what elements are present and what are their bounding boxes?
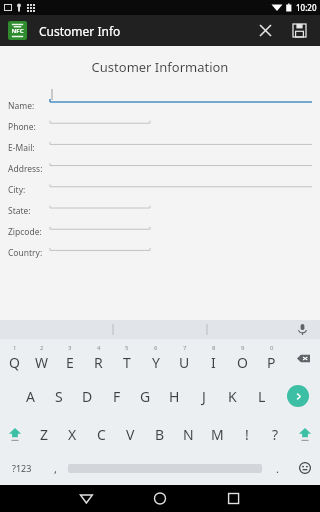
button[interactable]: Save	[282, 15, 316, 46]
staticText: W	[35, 353, 49, 372]
staticText: K	[228, 387, 237, 406]
button[interactable]: NFC app icon	[8, 21, 27, 40]
button[interactable]: 2	[28, 339, 56, 377]
button[interactable]: J	[189, 377, 218, 415]
staticText: E	[66, 353, 74, 372]
staticText: M	[211, 425, 224, 444]
button[interactable]: Back	[56, 485, 116, 512]
button[interactable]: Z	[30, 415, 58, 453]
button[interactable]: Voice input	[284, 320, 320, 339]
staticText: 1	[13, 344, 17, 352]
button[interactable]: L	[247, 377, 276, 415]
staticText: 7	[183, 344, 187, 352]
button[interactable]: ?	[261, 415, 290, 453]
staticText: X	[68, 425, 77, 444]
button[interactable]: K	[218, 377, 247, 415]
button[interactable]: Shift	[0, 415, 30, 453]
button[interactable]: State:	[8, 200, 320, 221]
button[interactable]: Home	[130, 485, 190, 512]
staticText: !	[245, 425, 249, 444]
button[interactable]: N	[174, 415, 203, 453]
staticText: City:	[8, 184, 26, 196]
button[interactable]: Enter	[276, 377, 320, 415]
button[interactable]: 1	[0, 339, 28, 377]
button[interactable]: Close	[248, 15, 282, 46]
staticText: D	[82, 387, 93, 406]
staticText: O	[237, 353, 248, 372]
staticText: Z	[40, 425, 49, 444]
staticText: 9	[241, 344, 245, 352]
button[interactable]: 3	[56, 339, 84, 377]
button[interactable]: Country:	[8, 242, 320, 263]
staticText: Name:	[8, 100, 35, 112]
button[interactable]: 6	[141, 339, 170, 377]
staticText: 2	[40, 344, 44, 352]
staticText: I	[211, 353, 216, 372]
staticText: R	[94, 353, 103, 372]
button[interactable]: Shift	[290, 415, 320, 453]
button[interactable]: S	[44, 377, 73, 415]
button[interactable]: B	[145, 415, 174, 453]
staticText: L	[258, 387, 266, 406]
staticText: Country:	[8, 247, 43, 259]
button[interactable]: H	[160, 377, 189, 415]
staticText: P	[267, 353, 276, 372]
button[interactable]: !	[232, 415, 261, 453]
button[interactable]: Backspace	[286, 339, 320, 377]
staticText: ?123	[12, 462, 32, 474]
button[interactable]: M	[203, 415, 232, 453]
button[interactable]: 0	[257, 339, 286, 377]
staticText: E-Mail:	[8, 142, 35, 154]
staticText: .	[276, 461, 279, 476]
staticText: S	[55, 387, 63, 406]
staticText: N	[183, 425, 194, 444]
staticText: B	[155, 425, 165, 444]
button[interactable]: A	[16, 377, 44, 415]
staticText: H	[169, 387, 180, 406]
button[interactable]: Emoji	[290, 453, 320, 483]
button[interactable]: 4	[84, 339, 112, 377]
button[interactable]: C	[87, 415, 116, 453]
button[interactable]: V	[116, 415, 145, 453]
button[interactable]: Space	[68, 453, 262, 483]
staticText: 3	[68, 344, 72, 352]
staticText: G	[140, 387, 151, 406]
staticText: NFC	[11, 27, 24, 35]
staticText: Phone:	[8, 121, 36, 133]
staticText: T	[123, 353, 131, 372]
button[interactable]: Name:	[8, 95, 320, 116]
button[interactable]: Recents	[236, 485, 296, 512]
staticText: Zipcode:	[8, 226, 42, 238]
button[interactable]: X	[58, 415, 87, 453]
button[interactable]: Zipcode:	[8, 221, 320, 242]
button[interactable]: E-Mail:	[8, 137, 320, 158]
button[interactable]: 9	[228, 339, 257, 377]
staticText: ,	[54, 461, 57, 476]
button[interactable]: Address:	[8, 158, 320, 179]
staticText: Customer Information	[0, 58, 320, 76]
staticText: 6	[154, 344, 158, 352]
button[interactable]: D	[73, 377, 102, 415]
staticText: Address:	[8, 163, 43, 175]
staticText: A	[26, 387, 35, 406]
staticText: 5	[125, 344, 129, 352]
staticText: Q	[9, 353, 20, 372]
staticText: State:	[8, 205, 31, 217]
button[interactable]: Phone:	[8, 116, 320, 137]
staticText: 8	[212, 344, 216, 352]
staticText: 4	[97, 344, 101, 352]
button[interactable]: ?123	[0, 453, 44, 483]
staticText: Customer Info	[39, 23, 121, 39]
button[interactable]: City:	[8, 179, 320, 200]
staticText: ?	[272, 425, 279, 444]
button[interactable]: 7	[170, 339, 199, 377]
button[interactable]: .	[264, 453, 290, 483]
staticText: Y	[152, 353, 160, 372]
button[interactable]: 8	[199, 339, 228, 377]
staticText: J	[202, 387, 206, 406]
button[interactable]: 5	[112, 339, 141, 377]
button[interactable]: G	[131, 377, 160, 415]
button[interactable]: ,	[44, 453, 66, 483]
button[interactable]: F	[102, 377, 131, 415]
staticText: V	[126, 425, 135, 444]
